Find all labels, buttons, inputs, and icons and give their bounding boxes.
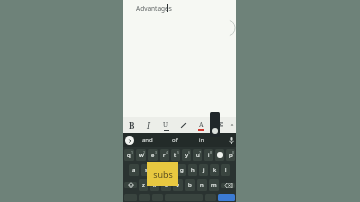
staticText: subs bbox=[153, 168, 173, 180]
button[interactable]: m bbox=[209, 179, 219, 191]
button[interactable]: x bbox=[150, 179, 159, 191]
staticText: p bbox=[229, 151, 233, 159]
button[interactable]: Settings bbox=[210, 112, 220, 137]
button[interactable]: t bbox=[171, 149, 180, 161]
staticText: 5 bbox=[177, 150, 180, 155]
button[interactable]: f bbox=[165, 164, 175, 176]
staticText: g bbox=[180, 166, 184, 174]
button[interactable]: Underline bbox=[157, 117, 174, 133]
button[interactable]: Advantages bbox=[123, 0, 236, 117]
button[interactable]: l bbox=[221, 164, 230, 176]
button[interactable]: in bbox=[188, 133, 215, 147]
button[interactable]: e bbox=[148, 149, 158, 161]
staticText: i bbox=[208, 151, 210, 159]
button[interactable]: v bbox=[173, 179, 183, 191]
staticText: k bbox=[213, 166, 217, 174]
staticText: t bbox=[174, 151, 177, 159]
staticText: and bbox=[142, 136, 153, 144]
staticText: 1 bbox=[131, 150, 134, 155]
button[interactable]: Enter bbox=[218, 194, 235, 201]
button[interactable]: w bbox=[136, 149, 146, 161]
staticText: of bbox=[172, 136, 178, 144]
staticText: c bbox=[165, 181, 168, 189]
button[interactable]: Voice input bbox=[227, 133, 236, 147]
button[interactable]: Expand toolbar bbox=[125, 136, 134, 145]
staticText: j bbox=[203, 166, 205, 174]
button[interactable]: q bbox=[124, 149, 134, 161]
button[interactable]: r bbox=[160, 149, 169, 161]
button[interactable]: Backspace bbox=[221, 183, 235, 188]
staticText: b bbox=[188, 181, 192, 189]
staticText: v bbox=[176, 181, 180, 189]
button[interactable]: d bbox=[153, 164, 163, 176]
staticText: q bbox=[127, 151, 131, 159]
staticText: e bbox=[151, 151, 155, 159]
staticText: w bbox=[139, 151, 144, 159]
button[interactable]: i bbox=[204, 149, 213, 161]
button[interactable]: Highlight bbox=[174, 117, 192, 133]
staticText: 6 bbox=[188, 150, 191, 155]
staticText: s bbox=[145, 166, 148, 174]
staticText: n bbox=[200, 181, 204, 189]
staticText: m bbox=[211, 181, 217, 189]
staticText: A bbox=[199, 120, 204, 129]
staticText: I bbox=[147, 120, 150, 131]
button[interactable]: b bbox=[185, 179, 195, 191]
button[interactable]: c bbox=[161, 179, 171, 191]
staticText: r bbox=[163, 151, 166, 159]
staticText: 2 bbox=[143, 150, 146, 155]
button[interactable]: n bbox=[197, 179, 207, 191]
staticText: 7 bbox=[199, 150, 202, 155]
button[interactable]: y bbox=[182, 149, 191, 161]
staticText: y bbox=[185, 151, 189, 159]
staticText: U bbox=[163, 120, 169, 130]
button[interactable]: a bbox=[129, 164, 139, 176]
button[interactable]: h bbox=[188, 164, 197, 176]
button[interactable]: and bbox=[134, 133, 161, 147]
staticText: 0 bbox=[232, 150, 235, 155]
staticText: 3 bbox=[155, 150, 158, 155]
button[interactable]: More options bbox=[228, 117, 236, 133]
staticText: l bbox=[225, 166, 227, 174]
staticText: Advantages bbox=[136, 4, 172, 13]
staticText: x bbox=[153, 181, 157, 189]
button[interactable]: s bbox=[141, 164, 151, 176]
staticText: h bbox=[191, 166, 195, 174]
button[interactable] bbox=[215, 149, 224, 161]
button[interactable]: of bbox=[161, 133, 188, 147]
button[interactable]: p bbox=[226, 149, 235, 161]
button[interactable]: z bbox=[139, 179, 148, 191]
staticText: 8 bbox=[210, 150, 213, 155]
staticText: 4 bbox=[166, 150, 169, 155]
button[interactable]: u bbox=[193, 149, 202, 161]
button[interactable]: k bbox=[210, 164, 219, 176]
button[interactable]: Alignment bbox=[210, 117, 228, 133]
staticText: d bbox=[156, 166, 160, 174]
button[interactable]: Text colour bbox=[192, 117, 210, 133]
staticText: f bbox=[169, 166, 172, 174]
staticText: z bbox=[142, 181, 145, 189]
button[interactable]: Shift bbox=[124, 182, 137, 188]
staticText: in bbox=[199, 136, 205, 144]
staticText: u bbox=[196, 151, 200, 159]
button[interactable]: I bbox=[140, 117, 157, 133]
staticText: B bbox=[129, 120, 135, 131]
staticText: a bbox=[132, 166, 136, 174]
button[interactable]: j bbox=[199, 164, 208, 176]
button[interactable]: g bbox=[177, 164, 186, 176]
button[interactable]: B bbox=[123, 117, 140, 133]
